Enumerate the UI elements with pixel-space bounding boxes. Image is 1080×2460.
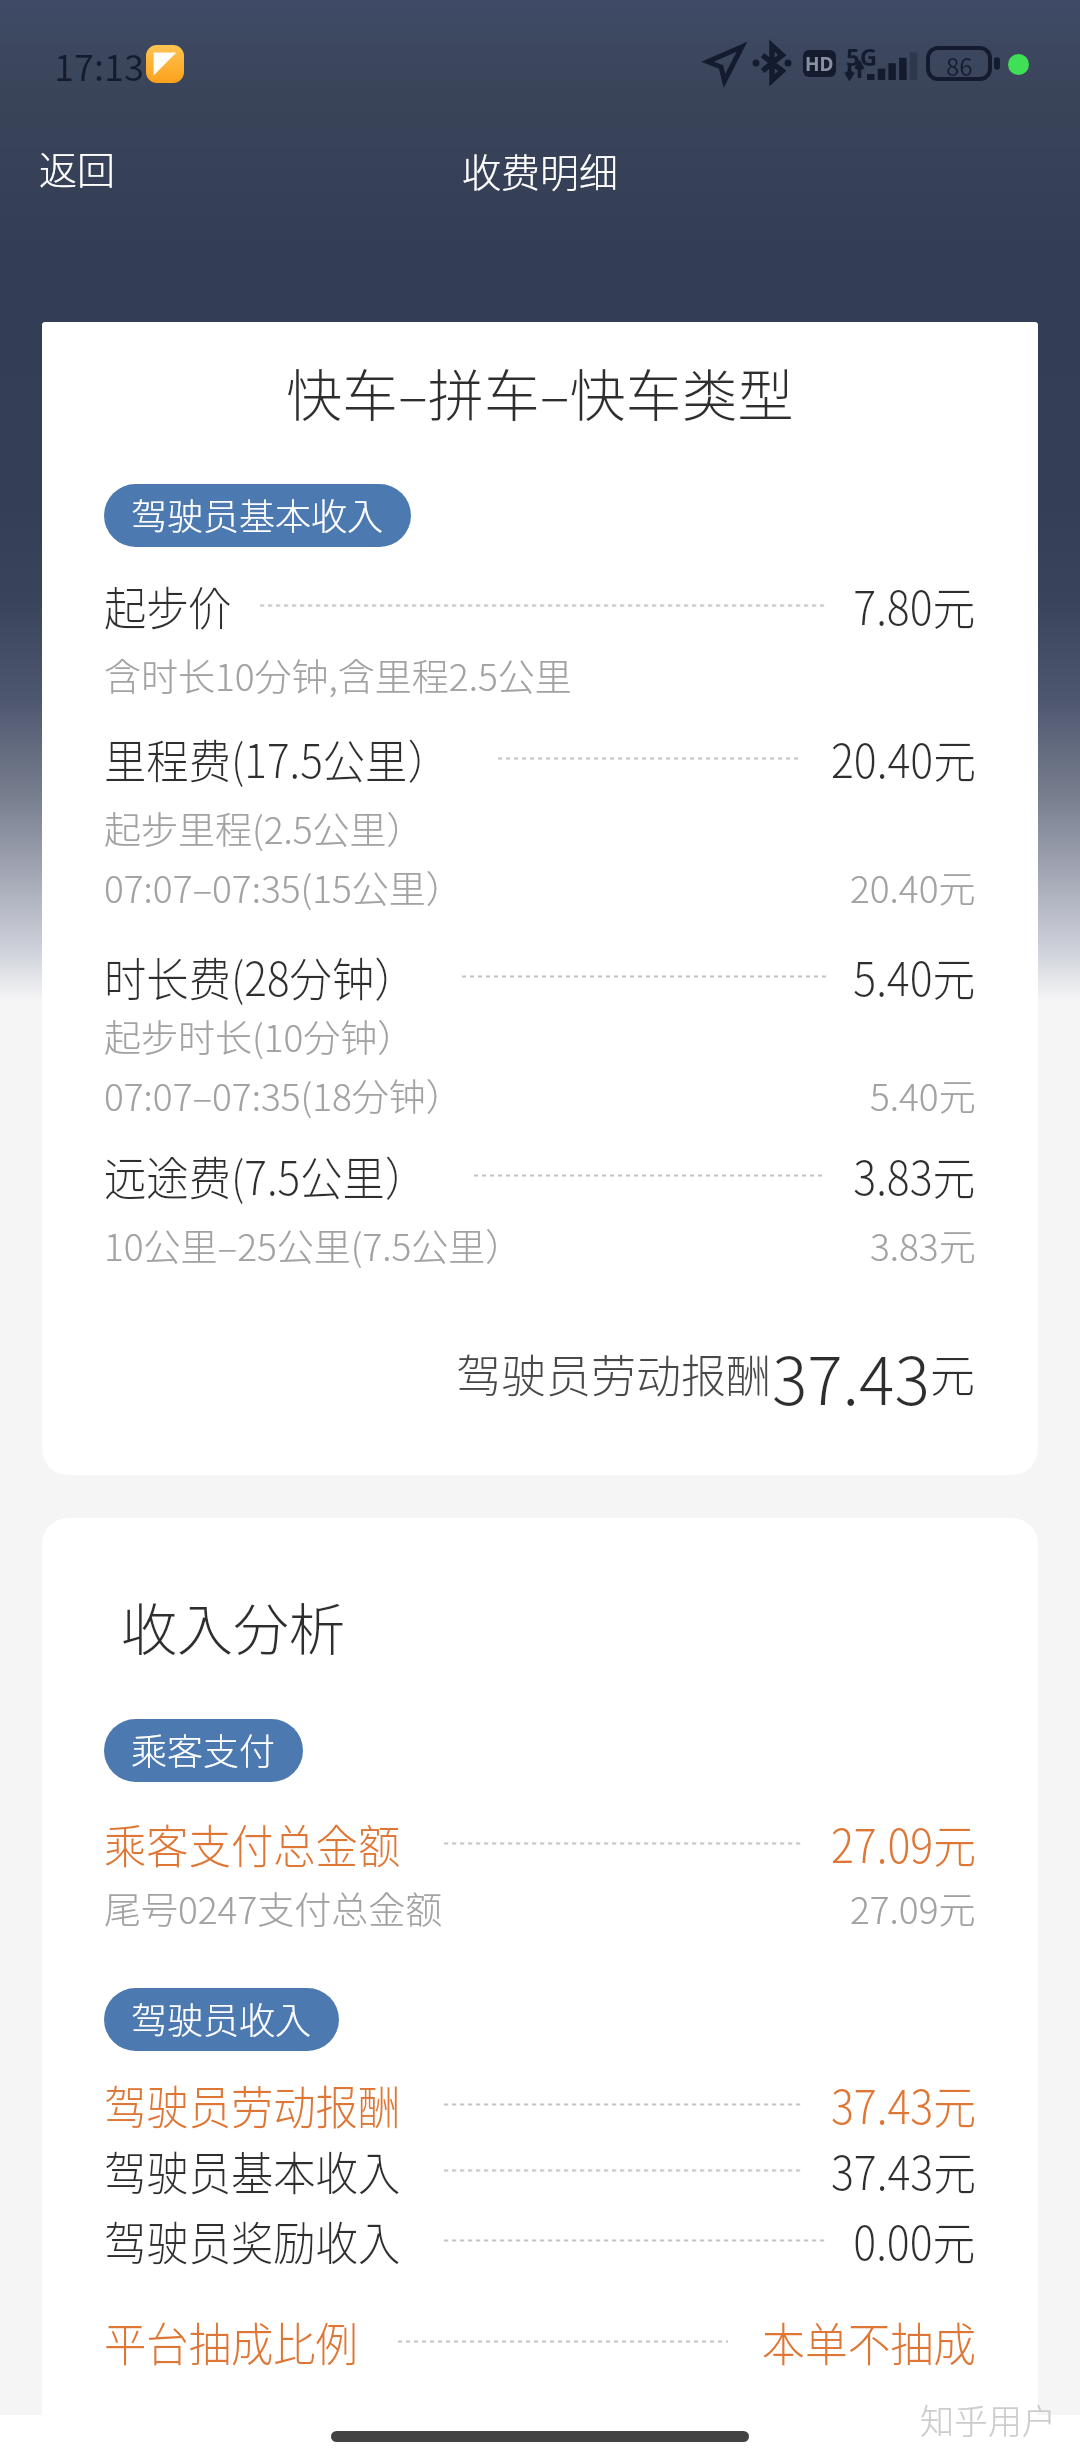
staticText: 17:13 [54, 39, 144, 91]
button[interactable]: 驾驶员基本收入 [104, 2137, 976, 2204]
staticText: 含时长10分钟,含里程2.5公里 [104, 648, 572, 702]
staticText: 时长费(28分钟） [104, 943, 417, 1010]
staticText: 7.80元 [853, 572, 976, 639]
staticText: 驾驶员基本收入 [104, 2137, 400, 2204]
button[interactable]: 起步里程(2.5公里） [104, 801, 976, 855]
staticText: 10公里–25公里(7.5公里） [104, 1218, 523, 1272]
staticText: 驾驶员奖励收入 [104, 2207, 400, 2274]
staticText: 20.40元 [850, 860, 976, 914]
button[interactable]: 乘客支付 [104, 1719, 303, 1782]
staticText: 37.43元 [831, 2137, 976, 2204]
staticText: 元 [930, 1341, 976, 1406]
staticText: 驾驶员劳动报酬 [104, 2071, 400, 2138]
button[interactable]: 远途费(7.5公里） [104, 1142, 976, 1209]
staticText: 起步价 [104, 572, 231, 639]
button[interactable]: 07:07–07:35(18分钟） [104, 1068, 976, 1122]
staticText: 37.43 [772, 1328, 930, 1424]
staticText: 07:07–07:35(15公里） [104, 860, 463, 914]
staticText: 乘客支付总金额 [104, 1810, 400, 1877]
other: Location [707, 46, 742, 81]
staticText: 远途费(7.5公里） [104, 1142, 428, 1209]
staticText: 驾驶员收入 [131, 1992, 312, 2044]
staticText: 起步里程(2.5公里） [104, 801, 424, 855]
button[interactable]: 驾驶员奖励收入 [104, 2207, 976, 2274]
other: Bluetooth [755, 45, 789, 81]
button[interactable]: 尾号0247支付总金额 [104, 1881, 976, 1935]
staticText: 起步时长(10分钟） [104, 1009, 415, 1063]
button[interactable]: 返回 [39, 140, 116, 195]
staticText: 平台抽成比例 [104, 2308, 358, 2375]
staticText: HD [805, 51, 834, 77]
staticText: 27.09元 [850, 1881, 976, 1935]
staticText: 里程费(17.5公里） [104, 725, 450, 792]
staticText: 0.00元 [853, 2207, 976, 2274]
staticText: 收入分析 [121, 1585, 345, 1666]
button[interactable]: 起步价 [104, 572, 976, 639]
staticText: 07:07–07:35(18分钟） [104, 1068, 463, 1122]
button[interactable]: 乘客支付总金额 [104, 1810, 976, 1877]
staticText: 86 [946, 48, 973, 79]
staticText: 3.83元 [853, 1142, 976, 1209]
button[interactable]: 含时长10分钟,含里程2.5公里 [104, 648, 976, 702]
staticText: 驾驶员劳动报酬 [456, 1341, 772, 1406]
button[interactable]: 驾驶员劳动报酬 [104, 2071, 976, 2138]
button[interactable]: 驾驶员基本收入 [104, 484, 411, 547]
button[interactable]: 驾驶员收入 [104, 1988, 339, 2051]
staticText: 27.09元 [831, 1810, 976, 1877]
staticText: 驾驶员基本收入 [131, 488, 384, 540]
button[interactable]: 起步时长(10分钟） [104, 1009, 976, 1063]
staticText: 快车–拼车–快车类型 [286, 351, 794, 432]
button[interactable]: 里程费(17.5公里） [104, 725, 976, 792]
staticText: 乘客支付 [131, 1723, 276, 1775]
staticText: 知乎用户 [920, 2395, 1056, 2444]
staticText: 尾号0247支付总金额 [104, 1881, 443, 1935]
button[interactable]: 时长费(28分钟） [104, 943, 976, 1010]
staticText: 收费明细 [462, 142, 619, 198]
staticText: 5.40元 [853, 943, 976, 1010]
button[interactable]: 10公里–25公里(7.5公里） [104, 1218, 976, 1272]
button[interactable]: 平台抽成比例 [104, 2308, 976, 2375]
button[interactable]: 07:07–07:35(15公里） [104, 860, 976, 914]
staticText: 5.40元 [870, 1068, 976, 1122]
staticText: 3.83元 [870, 1218, 976, 1272]
staticText: 37.43元 [831, 2071, 976, 2138]
staticText: 本单不抽成 [762, 2308, 976, 2375]
staticText: 5G [846, 40, 878, 73]
staticText: 20.40元 [831, 725, 976, 792]
